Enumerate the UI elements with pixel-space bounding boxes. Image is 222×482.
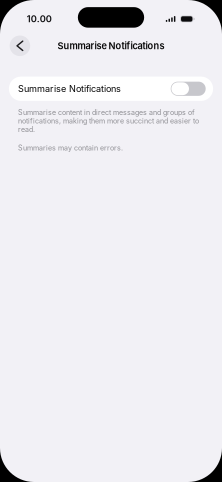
button[interactable]: Back [10,35,30,56]
staticText: Summarise Notifications [18,83,121,94]
staticText: Summaries may contain errors. [18,143,123,152]
staticText: 10.00 [27,13,52,24]
staticText: Summarise Notifications [57,40,164,51]
staticText: Summarise content in direct messages and… [18,108,199,134]
button[interactable]: Summarise Notifications [9,77,213,101]
